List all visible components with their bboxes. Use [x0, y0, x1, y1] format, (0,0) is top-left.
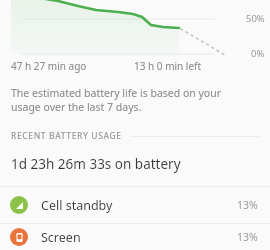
- staticText: RECENT BATTERY USAGE: [11, 130, 122, 142]
- staticText: The estimated battery life is based on y…: [11, 86, 252, 114]
- staticText: 13 h 0 min left: [134, 59, 202, 73]
- button[interactable]: Cell standby: [0, 187, 270, 223]
- staticText: 0%: [251, 47, 265, 58]
- button[interactable]: Screen: [0, 224, 270, 250]
- staticText: 13%: [237, 198, 258, 212]
- staticText: 50%: [246, 12, 265, 25]
- staticText: 13%: [237, 230, 258, 244]
- staticText: 1d 23h 26m 33s on battery: [11, 155, 181, 173]
- staticText: 47 h 27 min ago: [11, 59, 87, 73]
- staticText: Screen: [41, 229, 237, 246]
- staticText: Cell standby: [41, 197, 237, 214]
